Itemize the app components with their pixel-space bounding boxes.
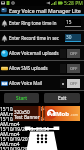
staticText: Start — [16, 95, 28, 102]
staticText: 5:28 PM — [64, 0, 83, 6]
button[interactable]: 320x50 — [13, 106, 80, 121]
staticText: AM.mp4 — [0, 141, 20, 146]
staticText: 320x50 — [14, 109, 30, 114]
staticText: Easy Voice mail Manager Lite — [9, 7, 81, 14]
staticText: OFF — [70, 66, 78, 71]
staticText: Allow Voicemail uploads — [9, 50, 59, 56]
staticText: 15 — [66, 19, 72, 26]
staticText: Exit — [58, 95, 67, 102]
staticText: AM.mp4 — [0, 131, 20, 136]
button[interactable]: 15 — [65, 19, 81, 27]
staticText: Allow Voice Mail Directing — [9, 80, 59, 86]
staticText: AM.mp4 — [0, 111, 20, 116]
staticText: 15'10/19/2013, 23:27 — [0, 136, 49, 141]
button[interactable]: Start — [4, 93, 39, 103]
staticText: 30 — [66, 34, 72, 41]
staticText: Enter Record time in sec — [9, 35, 64, 41]
staticText: Allow SMS uploads — [9, 65, 59, 71]
staticText: 15'10/19/2013, 23:20 — [0, 146, 49, 150]
staticText: 15'10/19/2013, 23:34 — [0, 126, 49, 131]
button[interactable]: Allow Voice Mail Directing — [0, 76, 84, 90]
staticText: OFF — [70, 51, 78, 56]
button[interactable]: 30 — [65, 34, 81, 42]
staticText: Enter Ring tone time in sec — [9, 20, 64, 26]
staticText: Test Banner — [14, 114, 40, 119]
button[interactable]: Exit — [44, 93, 80, 103]
staticText: 15'10/19/2013, 23:41 — [0, 116, 49, 121]
button[interactable]: Allow SMS uploads — [0, 61, 84, 75]
button[interactable]: Enter Record time in sec — [0, 31, 84, 45]
staticText: OFF — [70, 81, 78, 86]
button[interactable]: Toggle setting — [60, 49, 80, 58]
staticText: AdMob — [48, 110, 70, 118]
button[interactable]: Allow Voicemail uploads — [0, 46, 84, 60]
button[interactable]: Enter Ring tone time in sec — [0, 16, 84, 30]
button[interactable]: Toggle setting — [60, 64, 80, 73]
button[interactable]: Toggle setting — [60, 79, 80, 88]
staticText: 15'10/19/2013, 23:48 — [0, 106, 49, 111]
staticText: AM.mp4 — [0, 121, 20, 126]
staticText: .com — [70, 112, 79, 117]
